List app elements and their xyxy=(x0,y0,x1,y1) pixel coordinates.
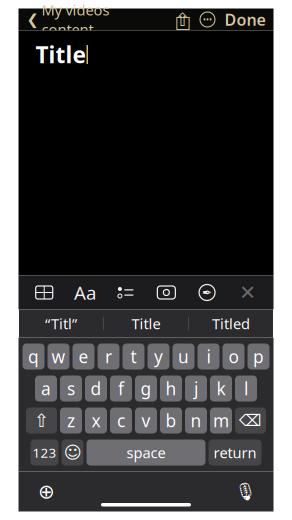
staticText: ⇧ xyxy=(33,410,49,431)
staticText: “Titl” xyxy=(45,314,77,333)
staticText: r xyxy=(105,345,112,368)
staticText: e xyxy=(78,345,88,368)
button[interactable]: More xyxy=(194,8,220,30)
button[interactable]: l xyxy=(235,375,257,401)
button[interactable]: aa xyxy=(70,277,100,307)
button[interactable]: e xyxy=(72,343,94,369)
staticText: q xyxy=(28,345,39,368)
button[interactable]: Share xyxy=(170,8,194,30)
button[interactable]: s xyxy=(60,375,82,401)
staticText: □ xyxy=(174,12,190,32)
button[interactable]: w xyxy=(47,343,69,369)
button[interactable]: list xyxy=(111,277,141,307)
staticText: x xyxy=(91,409,100,432)
staticText: c xyxy=(117,409,125,432)
button[interactable]: x xyxy=(233,277,263,307)
staticText: k xyxy=(216,377,225,400)
staticText: ✒ xyxy=(202,286,212,299)
staticText: space xyxy=(126,443,165,462)
button[interactable]: Title xyxy=(104,312,188,334)
staticText: Done xyxy=(224,9,265,30)
staticText: g xyxy=(140,377,151,400)
button[interactable]: space xyxy=(86,439,205,465)
staticText: b xyxy=(165,409,176,432)
staticText: Titled xyxy=(212,314,250,333)
staticText: ••• xyxy=(203,14,212,25)
button[interactable]: pen xyxy=(192,277,222,307)
staticText: o xyxy=(228,345,238,368)
staticText: l xyxy=(244,377,248,400)
staticText: ❮ xyxy=(26,11,38,28)
button[interactable]: Titled xyxy=(189,312,273,334)
staticText: Title xyxy=(131,314,160,333)
staticText: n xyxy=(190,409,201,432)
button[interactable]: r xyxy=(97,343,119,369)
button[interactable]: c xyxy=(110,407,132,433)
staticText: return xyxy=(213,443,256,462)
staticText: v xyxy=(141,409,150,432)
button[interactable]: ⌫ xyxy=(235,407,266,433)
staticText: ☺ xyxy=(63,443,81,462)
button[interactable]: 123 xyxy=(30,439,58,465)
button[interactable]: g xyxy=(135,375,157,401)
button[interactable]: u xyxy=(172,343,194,369)
button[interactable]: p xyxy=(247,343,269,369)
staticText: u xyxy=(178,345,189,368)
button[interactable]: camera xyxy=(151,277,181,307)
staticText: My videos content xyxy=(41,0,109,39)
staticText: a xyxy=(41,377,51,400)
staticText: s xyxy=(67,377,75,400)
button[interactable]: a xyxy=(35,375,57,401)
staticText: h xyxy=(165,377,176,400)
button[interactable]: i xyxy=(197,343,219,369)
staticText: p xyxy=(253,345,264,368)
staticText: Aa xyxy=(74,280,96,305)
button[interactable]: x xyxy=(85,407,107,433)
button[interactable]: z xyxy=(60,407,82,433)
button[interactable]: return xyxy=(208,439,261,465)
button[interactable]: “Titl” xyxy=(19,312,103,334)
button[interactable]: v xyxy=(135,407,157,433)
button[interactable]: Next keyboard xyxy=(32,478,60,504)
button[interactable]: t xyxy=(122,343,144,369)
staticText: 🎙 xyxy=(234,482,256,501)
button[interactable]: m xyxy=(210,407,232,433)
button[interactable]: y xyxy=(147,343,169,369)
button[interactable]: h xyxy=(160,375,182,401)
button[interactable]: Dictate xyxy=(231,478,259,504)
staticText: z xyxy=(67,409,75,432)
staticText: i xyxy=(206,345,210,368)
staticText: Title xyxy=(35,39,86,70)
staticText: w xyxy=(51,345,65,368)
staticText: 123 xyxy=(32,444,56,461)
staticText: m xyxy=(213,409,229,432)
button[interactable]: d xyxy=(85,375,107,401)
button[interactable]: Done xyxy=(220,9,265,30)
staticText: ⊕ xyxy=(38,480,55,503)
staticText: ⇧ xyxy=(174,9,190,30)
button[interactable]: table xyxy=(29,277,59,307)
button[interactable]: ☺ xyxy=(61,439,83,465)
staticText: t xyxy=(130,345,136,368)
staticText: d xyxy=(90,377,101,400)
staticText: j xyxy=(194,377,198,400)
button[interactable]: ❮ xyxy=(26,0,109,39)
staticText: ⌫ xyxy=(239,411,262,430)
button[interactable]: j xyxy=(185,375,207,401)
button[interactable]: q xyxy=(22,343,44,369)
staticText: y xyxy=(154,345,163,368)
button[interactable]: k xyxy=(210,375,232,401)
staticText: ✕ xyxy=(239,281,256,304)
button[interactable]: n xyxy=(185,407,207,433)
button[interactable]: ⇧ xyxy=(26,407,57,433)
button[interactable]: f xyxy=(110,375,132,401)
button[interactable]: o xyxy=(222,343,244,369)
button[interactable]: b xyxy=(160,407,182,433)
staticText: f xyxy=(118,377,124,400)
